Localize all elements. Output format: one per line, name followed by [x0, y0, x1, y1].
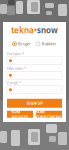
staticText: SOM BRUGER — [11, 109, 28, 119]
button[interactable]: SOM FORRETNING — [36, 111, 62, 118]
staticText: Butikker — [41, 41, 56, 46]
staticText: Efternavn * — [7, 66, 26, 71]
button[interactable]: SIGN UP — [7, 99, 62, 108]
staticText: E-mail * — [7, 80, 21, 85]
button[interactable]: Bruger — [12, 41, 31, 46]
staticText: SOM FORRETNING — [36, 109, 62, 119]
staticText: snow — [37, 25, 58, 35]
button[interactable]: Butikker — [36, 41, 56, 46]
staticText: • — [34, 25, 37, 35]
staticText: SIGN UP — [26, 101, 42, 106]
staticText: tekna — [11, 25, 34, 35]
button[interactable]: SOM BRUGER — [7, 111, 33, 118]
staticText: Fornavn * — [7, 51, 24, 56]
staticText: Bruger — [18, 41, 31, 46]
